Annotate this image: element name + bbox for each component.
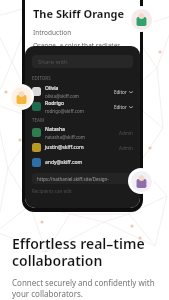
staticText: Share with [38, 58, 68, 66]
staticText: Editor [114, 89, 127, 95]
staticText: Editor [114, 104, 127, 110]
staticText: Admin [119, 145, 133, 151]
staticText: EDITORS [32, 75, 51, 81]
staticText: The Skiff Orange [33, 6, 125, 21]
button[interactable]: Member Rodrigo [128, 168, 154, 194]
staticText: andy@skiff.com [45, 159, 83, 166]
staticText: Orange, a color that radiates energy, wa… [33, 41, 132, 77]
staticText: Natasha [45, 126, 65, 133]
staticText: Introduction [33, 28, 72, 37]
button[interactable]: https://nathaniel.skiff.site/Design-a04f… [32, 173, 133, 184]
staticText: Effortless real–time collaboration [12, 234, 145, 270]
staticText: Connect securely and confidently with yo… [12, 277, 155, 300]
staticText: Recipients can edit [32, 188, 72, 194]
button[interactable]: Olivia [32, 84, 133, 99]
staticText: justin@skiff.com [45, 144, 84, 151]
button[interactable]: Rodrigo [32, 99, 133, 114]
staticText: natasha@skiff.com [45, 134, 85, 140]
button[interactable]: andy@skiff.com [32, 155, 133, 170]
staticText: Admin [119, 130, 133, 136]
staticText: Olivia [45, 85, 59, 92]
staticText: Rodrigo [45, 100, 64, 107]
staticText: rodrigo@skiff.com [45, 108, 84, 114]
staticText: https://nathaniel.skiff.site/Design-a04f… [37, 176, 122, 182]
button[interactable]: justin@skiff.com [32, 140, 133, 155]
button[interactable]: Share with [32, 55, 133, 68]
button[interactable]: Natasha [32, 125, 133, 140]
staticText: olivia@skiff.com [45, 93, 80, 99]
button[interactable]: Member Nathaniel [128, 6, 154, 32]
button[interactable]: Member Olivia [8, 84, 34, 110]
staticText: TEAM [32, 117, 45, 123]
